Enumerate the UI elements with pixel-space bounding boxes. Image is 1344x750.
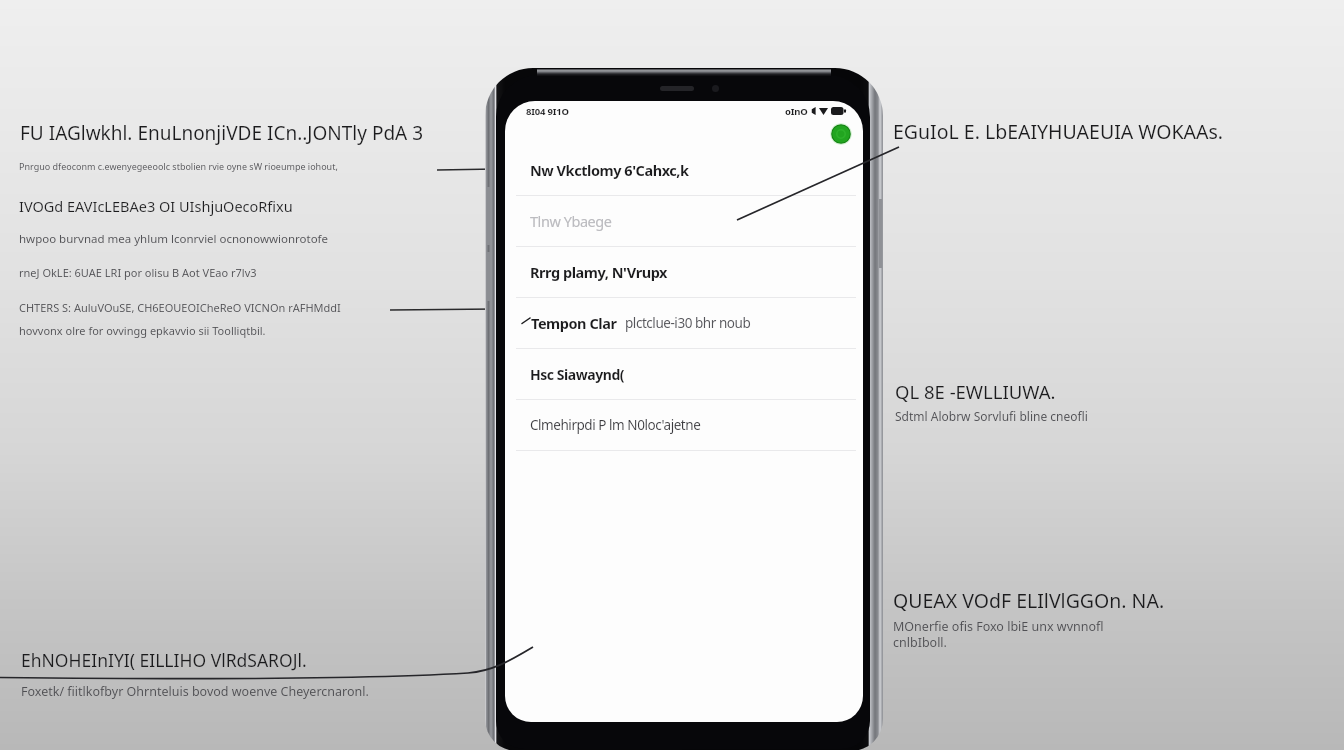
staticText: hwpoo burvnad mea yhlum lconrviel ocnono… [19,231,329,247]
staticText: hovvonx olre for ovvingg epkavvio sii To… [19,323,266,338]
staticText: plctclue-i30 bhr noub [625,314,751,332]
button[interactable]: Tlnw Ybaege [505,196,863,246]
button[interactable]: Hsc Siawaynd( [505,349,863,399]
staticText: Foxetk/ fiitlkofbyr Ohrnteluis bovod woe… [21,683,369,700]
button[interactable]: Rrrg plamy, N'Vrupx [505,247,863,297]
button[interactable]: Clmehirpdi P lm N0loc'ajetne [505,400,863,450]
button[interactable]: Tempon Clar [505,298,863,348]
staticText: CHTERS S: AuluVOuSE, CH6EOUEOICheReO VIC… [19,300,341,315]
staticText: QUEAX VOdF ELIlVlGGOn. NA. [893,587,1165,614]
staticText: Pnrguo dfeoconm c.ewenyegeeoolc stbolien… [19,160,338,172]
staticText: Nw Vkctlomy 6'Cahxc,k [530,160,689,180]
staticText: QL 8E -EWLLIUWA. [895,379,1056,404]
staticText: Rrrg plamy, N'Vrupx [530,262,668,282]
staticText: MOnerfie ofis Foxo lbiE unx wvnnofl [893,618,1104,635]
staticText: EGuIoL E. LbEAIYHUAEUIA WOKAAs. [893,118,1224,145]
staticText: EhNOHEInIYI( EILLIHO VlRdSAROJl. [21,648,307,672]
button[interactable]: Nw Vkctlomy 6'Cahxc,k [505,145,863,195]
staticText: IVOGd EAVIcLEBAe3 OI UIshjuOecoRfixu [19,196,293,216]
staticText: Tlnw Ybaege [530,211,612,231]
button[interactable]: Add new item [830,123,852,145]
staticText: Clmehirpdi P lm N0loc'ajetne [530,416,701,434]
staticText: rneJ OkLE: 6UAE LRI por olisu B Aot VEao… [19,265,257,280]
staticText: Tempon Clar [531,313,617,333]
staticText: Sdtml Alobrw Sorvlufi bline cneofli [895,408,1088,424]
staticText: oInO [785,105,808,118]
staticText: 8I04 9I1O [526,105,569,118]
staticText: cnlbIboll. [893,634,947,651]
staticText: FU IAGlwkhl. EnuLnonjiVDE ICn..JONTly Pd… [20,120,424,146]
staticText: Hsc Siawaynd( [530,365,625,384]
